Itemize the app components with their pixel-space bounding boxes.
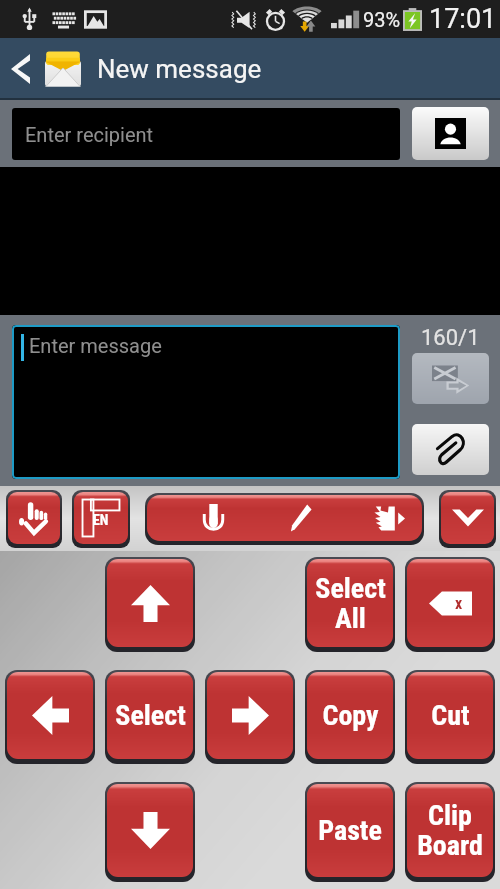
staticText: New message xyxy=(97,54,262,84)
staticText: x xyxy=(455,594,463,613)
staticText: Clip Board xyxy=(417,799,483,862)
button[interactable] xyxy=(147,495,422,541)
staticText: Enter recipient xyxy=(25,123,154,146)
button[interactable]: Move left xyxy=(7,672,93,759)
staticText: Copy xyxy=(322,699,379,732)
button[interactable]: Backspace xyxy=(407,559,493,647)
button[interactable]: Clip Board xyxy=(407,784,493,877)
button[interactable]: Paste xyxy=(307,784,393,877)
button[interactable]: Back xyxy=(0,38,40,100)
staticText: Paste xyxy=(318,814,382,847)
staticText: EN xyxy=(93,512,109,528)
button[interactable]: Select xyxy=(107,672,193,759)
button[interactable]: Handwriting input xyxy=(8,492,60,544)
button[interactable]: Copy xyxy=(307,672,393,759)
staticText: 17:01 xyxy=(429,3,497,35)
staticText: Cut xyxy=(431,699,470,732)
button[interactable]: Select All xyxy=(307,559,393,647)
button[interactable]: Move right xyxy=(207,672,293,759)
button[interactable]: Cut xyxy=(407,672,493,759)
button[interactable]: Move up xyxy=(107,559,193,647)
staticText: Select xyxy=(115,699,186,732)
button[interactable]: Attach xyxy=(412,424,489,475)
button[interactable]: Hide keyboard xyxy=(441,492,494,544)
staticText: 93% xyxy=(363,8,401,31)
button[interactable]: Send message xyxy=(412,353,489,404)
staticText: Select All xyxy=(315,572,386,635)
staticText: 160/1 xyxy=(421,325,480,351)
staticText: Enter message xyxy=(29,334,162,357)
button[interactable]: Language EN xyxy=(74,492,128,544)
button[interactable]: Enter recipient xyxy=(12,108,400,160)
button[interactable]: Choose contact xyxy=(412,107,489,160)
button[interactable]: Enter message xyxy=(12,325,400,479)
button[interactable]: Move down xyxy=(107,784,193,877)
